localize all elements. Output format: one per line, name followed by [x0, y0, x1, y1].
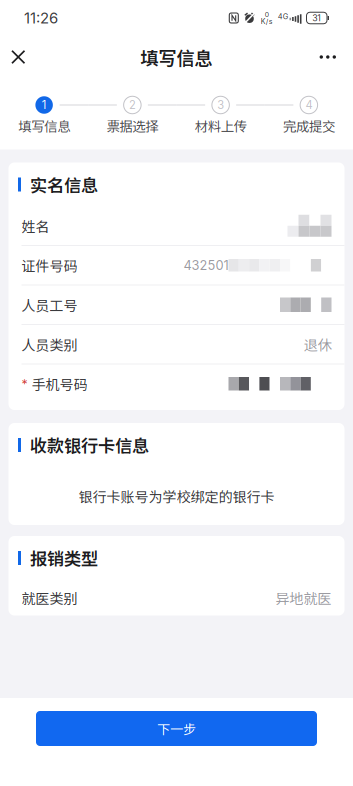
- staticText: K/s: [261, 17, 273, 26]
- staticText: 下一步: [157, 719, 196, 738]
- staticText: 实名信息: [30, 172, 98, 197]
- staticText: 就医类别: [21, 588, 77, 608]
- staticText: 退休: [303, 334, 331, 354]
- staticText: 2: [129, 98, 136, 112]
- staticText: 票据选择: [106, 116, 158, 135]
- staticText: 收款银行卡信息: [30, 432, 149, 457]
- staticText: 证件号码: [21, 255, 77, 275]
- staticText: 4G: [278, 12, 289, 21]
- button[interactable]: 更多: [304, 36, 353, 78]
- staticText: 完成提交: [283, 116, 335, 135]
- button[interactable]: 下一步: [36, 711, 317, 746]
- staticText: 姓名: [21, 216, 49, 236]
- staticText: 432501: [183, 257, 228, 273]
- staticText: 人员工号: [21, 295, 77, 315]
- staticText: 材料上传: [195, 116, 247, 135]
- staticText: *: [21, 376, 27, 391]
- staticText: 1: [42, 98, 47, 112]
- staticText: 31: [312, 13, 321, 23]
- staticText: 填写信息: [18, 116, 70, 135]
- staticText: 3: [217, 98, 224, 112]
- staticText: 0: [265, 10, 269, 19]
- staticText: 填写信息: [140, 44, 212, 70]
- button[interactable]: 关闭: [0, 36, 42, 78]
- staticText: 银行卡账号为学校绑定的银行卡: [78, 486, 274, 506]
- staticText: 手机号码: [31, 374, 87, 394]
- staticText: 报销类型: [30, 545, 98, 570]
- staticText: 人员类别: [21, 334, 77, 354]
- staticText: 4: [305, 98, 312, 112]
- staticText: 异地就医: [275, 587, 331, 608]
- staticText: 11:26: [24, 9, 58, 27]
